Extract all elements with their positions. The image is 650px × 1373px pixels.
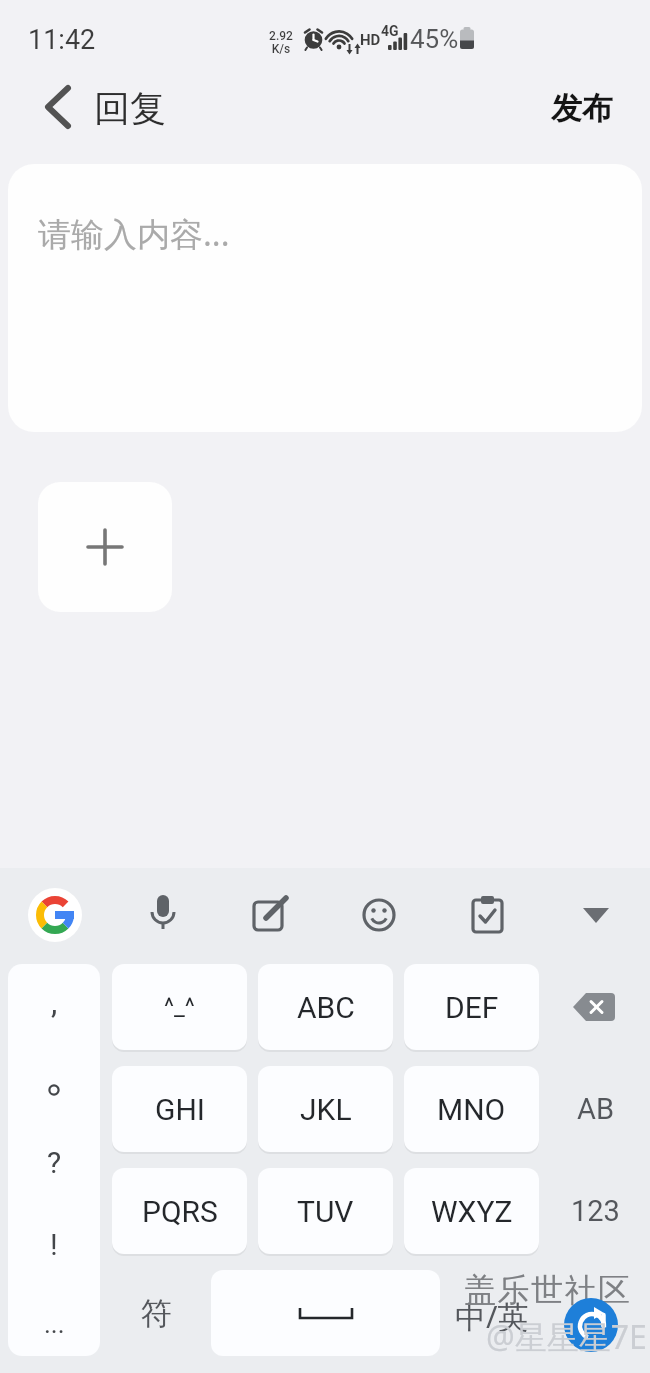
staticText: JKL bbox=[300, 1092, 352, 1127]
staticText: 2.92 K/s bbox=[269, 29, 293, 56]
button[interactable]: WXYZ bbox=[404, 1168, 539, 1254]
button[interactable]: 发布 bbox=[540, 84, 624, 132]
button[interactable]: 请输入内容... bbox=[8, 164, 642, 432]
staticText: ABC bbox=[297, 990, 355, 1025]
button[interactable] bbox=[580, 903, 612, 929]
staticText: 11:42 bbox=[28, 24, 96, 56]
button[interactable] bbox=[8, 964, 100, 1356]
staticText: 中/英 bbox=[455, 1295, 529, 1337]
button[interactable]: ABC bbox=[258, 964, 393, 1050]
staticText: WXYZ bbox=[431, 1194, 513, 1229]
button[interactable] bbox=[470, 895, 506, 937]
button[interactable]: 符 bbox=[116, 1288, 196, 1338]
staticText: TUV bbox=[297, 1194, 354, 1229]
button[interactable] bbox=[147, 893, 179, 939]
button[interactable] bbox=[252, 896, 292, 934]
staticText: MNO bbox=[437, 1092, 506, 1127]
button[interactable] bbox=[34, 82, 84, 132]
staticText: ^_^ bbox=[164, 993, 195, 1021]
staticText: AB bbox=[577, 1092, 614, 1126]
button[interactable]: JKL bbox=[258, 1066, 393, 1152]
staticText: 回复 bbox=[94, 86, 166, 131]
button[interactable]: MNO bbox=[404, 1066, 539, 1152]
button[interactable] bbox=[211, 1270, 440, 1356]
button[interactable]: PQRS bbox=[112, 1168, 247, 1254]
button[interactable]: GHI bbox=[112, 1066, 247, 1152]
button[interactable]: TUV bbox=[258, 1168, 393, 1254]
button[interactable]: 123 bbox=[555, 1186, 635, 1236]
staticText: ... bbox=[44, 1309, 65, 1339]
button[interactable] bbox=[28, 888, 82, 942]
staticText: HD bbox=[360, 31, 381, 49]
button[interactable] bbox=[361, 897, 397, 933]
staticText: GHI bbox=[155, 1092, 205, 1127]
staticText: 请输入内容... bbox=[38, 211, 230, 256]
staticText: @星星星7E bbox=[486, 1315, 647, 1359]
button[interactable] bbox=[38, 482, 172, 612]
button[interactable]: AB bbox=[555, 1084, 635, 1134]
button[interactable]: 中/英 bbox=[432, 1291, 552, 1341]
staticText: 123 bbox=[571, 1194, 620, 1228]
staticText: 盖乐世社区 bbox=[464, 1270, 632, 1310]
staticText: 符 bbox=[141, 1294, 172, 1333]
staticText: PQRS bbox=[142, 1194, 218, 1229]
staticText: 45% bbox=[410, 24, 459, 54]
staticText: DEF bbox=[445, 990, 499, 1025]
button[interactable]: DEF bbox=[404, 964, 539, 1050]
staticText: 4G bbox=[381, 23, 399, 39]
staticText: ! bbox=[50, 1227, 58, 1262]
staticText: , bbox=[51, 983, 58, 1021]
staticText: 发布 bbox=[551, 89, 613, 128]
staticText: ? bbox=[47, 1145, 62, 1180]
button[interactable] bbox=[567, 987, 623, 1027]
button[interactable]: ^_^ bbox=[112, 964, 247, 1050]
